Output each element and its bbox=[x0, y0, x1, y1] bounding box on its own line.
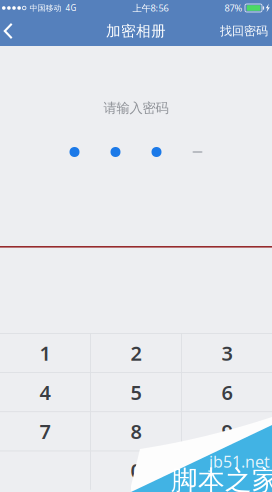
staticText: 6 bbox=[221, 379, 232, 405]
staticText: 中国移动 bbox=[29, 3, 61, 13]
staticText: 1 bbox=[39, 340, 50, 366]
button[interactable]: 9 bbox=[182, 412, 272, 451]
staticText: 0 bbox=[130, 457, 141, 484]
button[interactable]: 2 bbox=[91, 334, 181, 372]
staticText: 4G bbox=[65, 3, 76, 13]
staticText: 加密相册 bbox=[106, 22, 166, 40]
staticText: 脚本之家 bbox=[171, 464, 272, 492]
staticText: 找回密码 bbox=[220, 24, 268, 38]
button[interactable]: 1 bbox=[0, 334, 90, 372]
button[interactable]: 8 bbox=[91, 412, 181, 451]
staticText: 上午8:56 bbox=[132, 2, 168, 14]
button[interactable]: 7 bbox=[0, 412, 90, 451]
staticText: 9 bbox=[221, 418, 232, 445]
staticText: 4 bbox=[39, 379, 50, 405]
button[interactable]: 6 bbox=[182, 373, 272, 411]
staticText: 3 bbox=[221, 340, 232, 366]
staticText: 2 bbox=[130, 340, 141, 366]
staticText: 8 bbox=[130, 418, 141, 445]
button[interactable]: 0 bbox=[91, 451, 181, 490]
button[interactable]: Back bbox=[0, 16, 27, 46]
staticText: 5 bbox=[130, 379, 141, 405]
staticText: 请输入密码 bbox=[103, 100, 168, 116]
staticText: jb51.net bbox=[209, 451, 270, 472]
button[interactable]: 3 bbox=[182, 334, 272, 372]
button[interactable]: 找回密码 bbox=[220, 16, 272, 46]
button[interactable]: 4 bbox=[0, 373, 90, 411]
button[interactable]: 5 bbox=[91, 373, 181, 411]
staticText: 87% bbox=[224, 2, 242, 14]
staticText: 7 bbox=[39, 418, 50, 445]
button[interactable] bbox=[182, 451, 272, 490]
